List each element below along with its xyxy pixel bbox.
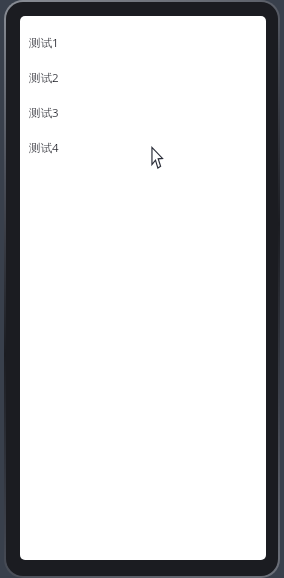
staticText: 测试2 xyxy=(29,70,59,86)
button[interactable]: 测试2 xyxy=(29,60,257,95)
staticText: 测试3 xyxy=(29,105,59,121)
button[interactable]: 测试3 xyxy=(29,95,257,130)
staticText: 测试1 xyxy=(29,35,59,51)
button[interactable]: 测试4 xyxy=(29,130,257,165)
button[interactable]: 测试1 xyxy=(29,25,257,60)
staticText: 测试4 xyxy=(29,140,59,156)
